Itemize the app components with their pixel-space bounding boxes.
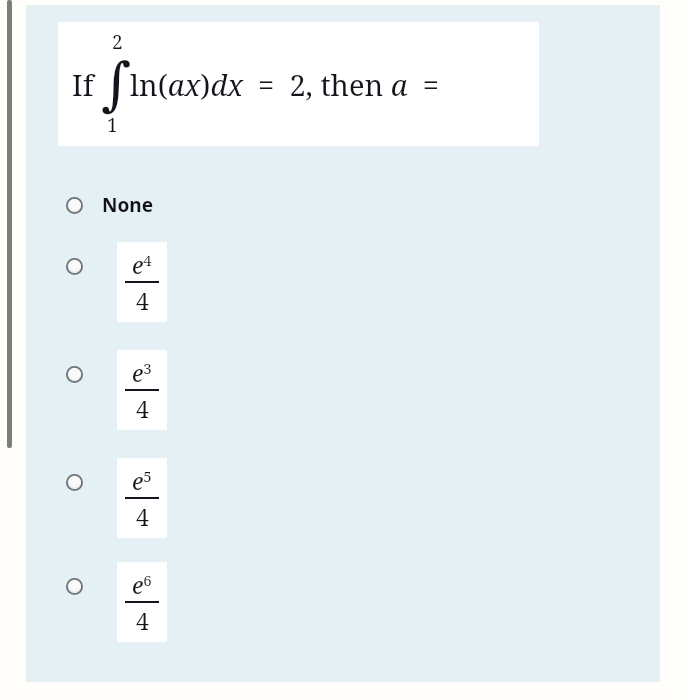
staticText: 4 [136,605,149,636]
other: Select e^4 over 4 [66,258,83,275]
button[interactable]: Select None [66,190,266,220]
staticText: 2 [112,29,123,55]
button[interactable]: Select e^6 over 4 [66,562,171,642]
other: Select e^5 over 4 [66,474,83,491]
staticText: e6 [132,569,152,600]
staticText: None [102,192,154,218]
button[interactable]: Select e^4 over 4 [66,242,171,322]
button[interactable]: Select e^5 over 4 [66,458,171,538]
button[interactable]: Select e^3 over 4 [66,350,171,430]
staticText: 1 [107,112,118,138]
other: Select None [66,197,83,214]
other: Scroll position [7,0,12,448]
staticText: e5 [132,465,152,496]
staticText: 4 [136,393,149,424]
other: Select e^3 over 4 [66,366,83,383]
staticText: If [72,65,94,104]
staticText: ln(ax)dx = 2, then a = [130,65,439,104]
staticText: 4 [136,501,149,532]
staticText: e3 [132,357,152,388]
staticText: 4 [136,285,149,316]
other: Select e^6 over 4 [66,578,83,595]
staticText: ∫ [101,50,127,118]
staticText: e4 [132,249,152,280]
